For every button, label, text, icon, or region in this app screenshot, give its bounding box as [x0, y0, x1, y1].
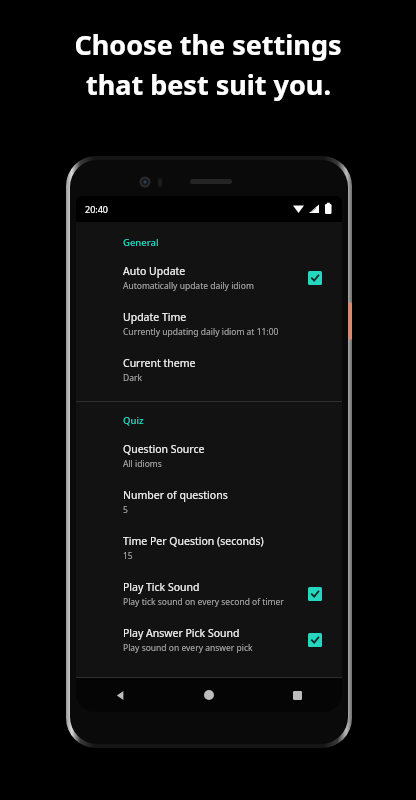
staticText: Currently updating daily idiom at 11:00 [123, 326, 279, 338]
staticText: Current theme [123, 356, 196, 370]
staticText: Dark [123, 372, 143, 384]
staticText: Choose the settings [74, 26, 342, 63]
button[interactable]: Current theme [76, 347, 342, 393]
staticText: Update Time [123, 310, 187, 324]
staticText: Auto Update [123, 264, 186, 278]
staticText: Automatically update daily idiom [123, 280, 254, 292]
staticText: that best suit you. [86, 66, 331, 103]
button[interactable]: Auto Update [76, 255, 342, 301]
staticText: Play sound on every answer pick [123, 642, 253, 654]
button[interactable]: Play Answer Pick Sound [76, 617, 342, 663]
staticText: Time Per Question (seconds) [123, 534, 264, 548]
staticText: 15 [123, 550, 133, 562]
button[interactable]: Play Answer Pick Sound enabled [308, 633, 322, 647]
staticText: Quiz [123, 414, 144, 427]
staticText: Play Tick Sound [123, 580, 200, 594]
button[interactable]: Back [76, 678, 164, 712]
button[interactable]: Number of questions [76, 479, 342, 525]
staticText: 20:40 [85, 203, 109, 215]
staticText: Question Source [123, 442, 205, 456]
staticText: Play tick sound on every second of timer [123, 596, 284, 608]
staticText: General [123, 236, 159, 249]
button[interactable]: Recents [253, 678, 342, 712]
button[interactable]: Home [164, 678, 253, 712]
staticText: Number of questions [123, 488, 228, 502]
button[interactable]: Update Time [76, 301, 342, 347]
staticText: 5 [123, 504, 128, 516]
button[interactable]: Auto Update enabled [308, 271, 322, 285]
staticText: All idioms [123, 458, 162, 470]
button[interactable]: Play Tick Sound enabled [308, 587, 322, 601]
button[interactable]: Time Per Question (seconds) [76, 525, 342, 571]
staticText: Play Answer Pick Sound [123, 626, 240, 640]
button[interactable]: Question Source [76, 433, 342, 479]
button[interactable]: Play Tick Sound [76, 571, 342, 617]
